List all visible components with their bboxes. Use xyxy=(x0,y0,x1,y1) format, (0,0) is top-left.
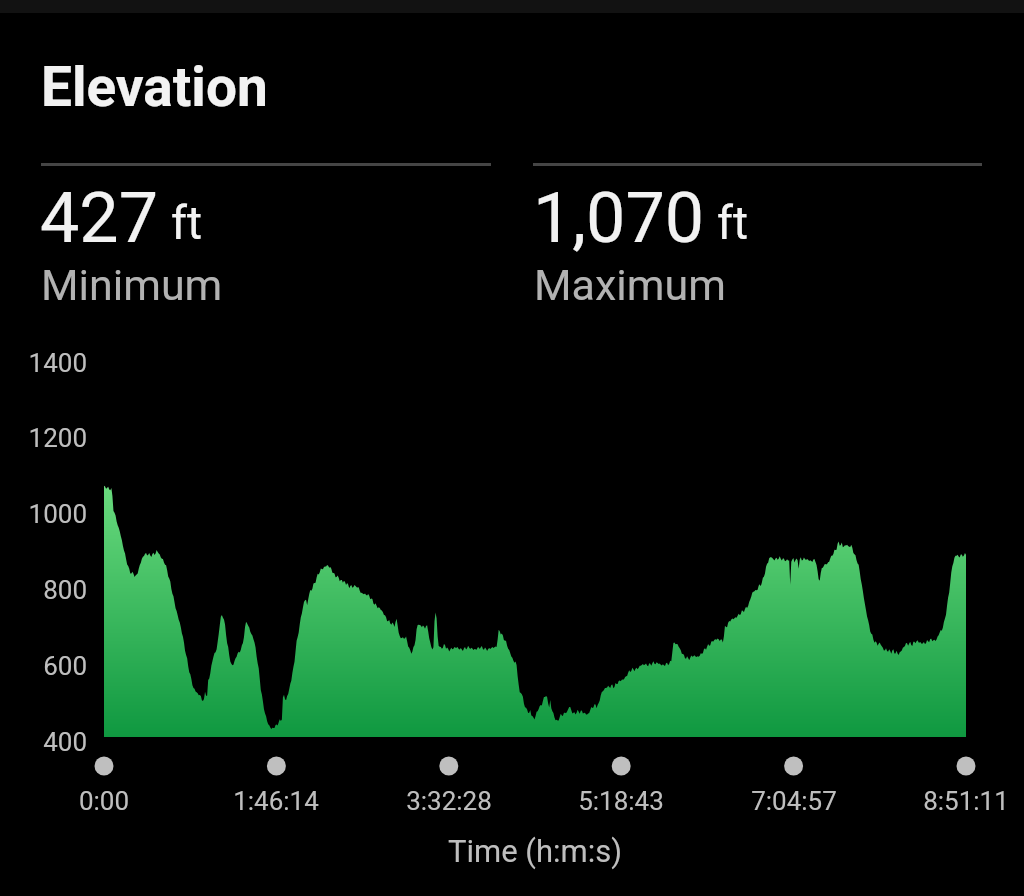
staticText: 1,070 xyxy=(533,177,705,259)
staticText: 5:18:43 xyxy=(511,786,731,816)
staticText: ft xyxy=(717,196,749,250)
staticText: 7:04:57 xyxy=(684,786,904,816)
staticText: Maximum xyxy=(534,260,726,310)
staticText: 0:00 xyxy=(0,786,214,816)
staticText: Time (h:m:s) xyxy=(23,833,1024,869)
staticText: 1200 xyxy=(0,423,87,453)
staticText: 600 xyxy=(0,651,87,681)
staticText: 400 xyxy=(0,727,87,757)
staticText: Minimum xyxy=(41,260,223,310)
button[interactable]: Elevation chart xyxy=(104,470,966,737)
staticText: 800 xyxy=(0,575,87,605)
staticText: ft xyxy=(171,196,203,250)
staticText: Elevation xyxy=(41,55,268,119)
staticText: 1000 xyxy=(0,499,87,529)
staticText: 1400 xyxy=(0,348,87,378)
staticText: 1:46:14 xyxy=(166,786,386,816)
staticText: 427 xyxy=(40,177,159,259)
button[interactable]: 427 xyxy=(40,172,490,307)
staticText: 8:51:11 xyxy=(856,786,1024,816)
button[interactable]: 1,070 xyxy=(533,172,983,307)
staticText: 3:32:28 xyxy=(339,786,559,816)
button[interactable]: Elevation xyxy=(41,55,268,119)
